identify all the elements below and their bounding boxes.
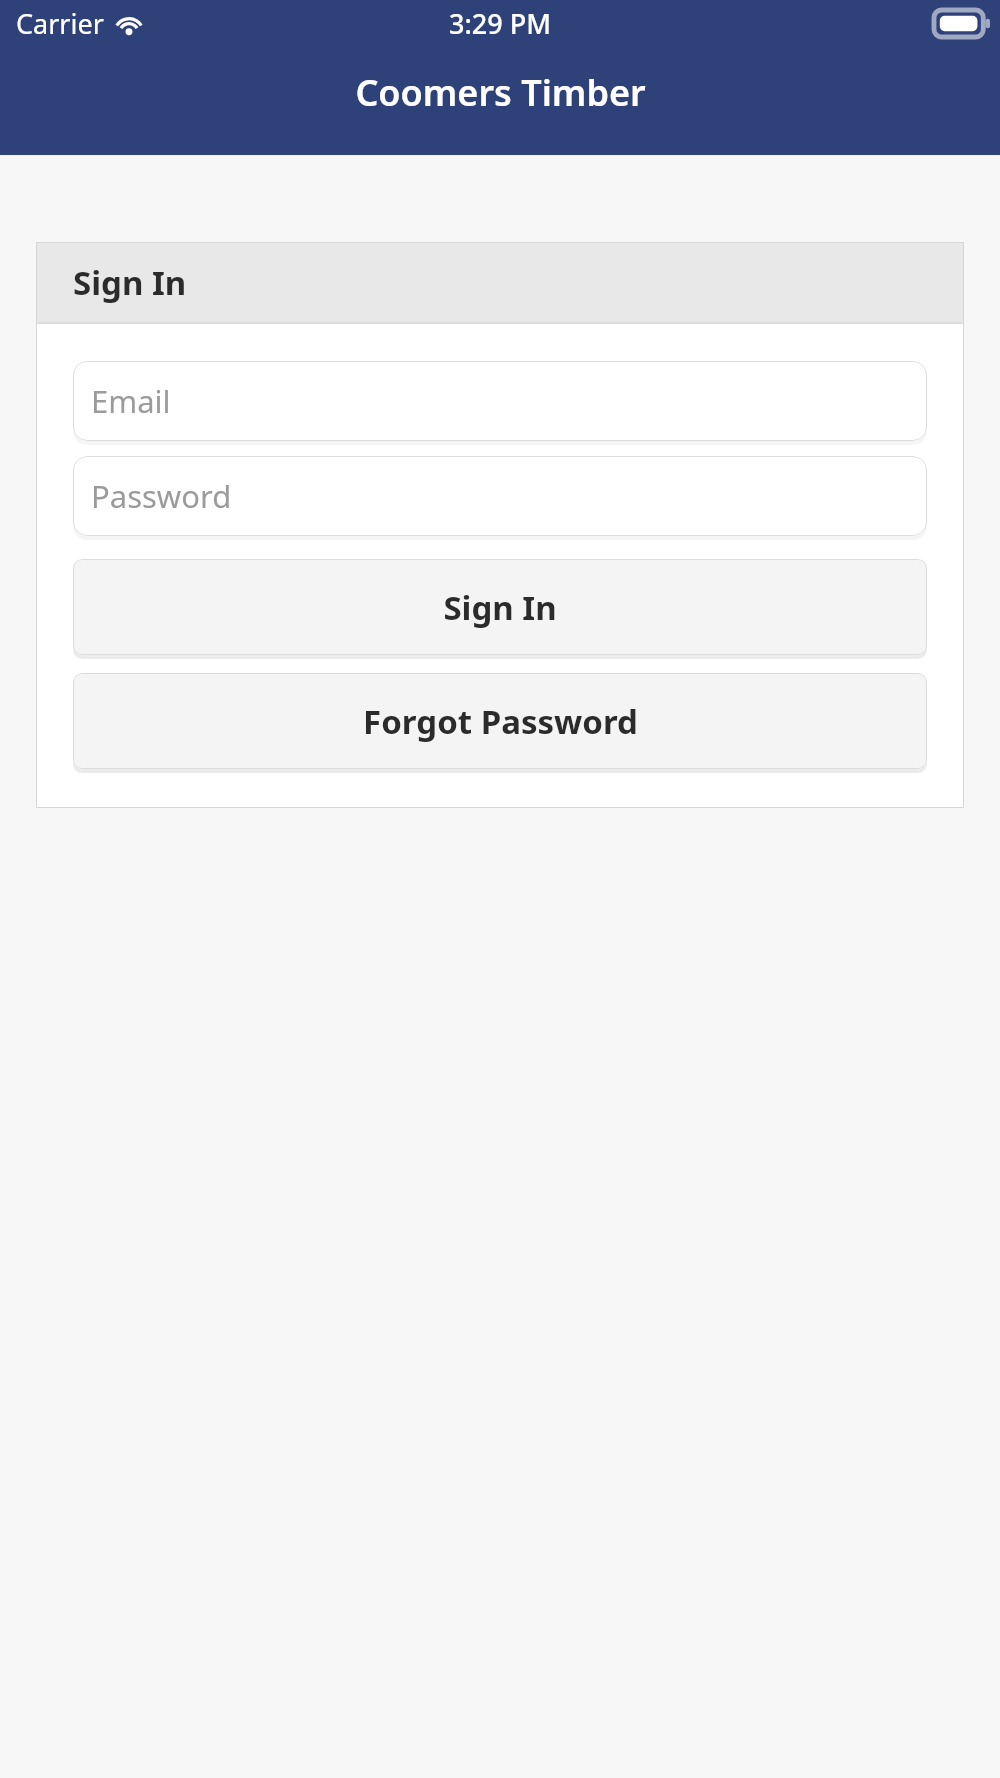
button[interactable]: Password [73, 456, 927, 538]
staticText: Carrier [16, 5, 104, 42]
button[interactable]: Forgot Password [73, 673, 927, 771]
other: Battery full [934, 10, 990, 37]
staticText: Forgot Password [363, 699, 638, 744]
button[interactable]: Email [73, 361, 927, 443]
other: Wi-Fi signal [114, 12, 144, 36]
staticText: Sign In [73, 260, 187, 305]
staticText: 3:29 PM [449, 5, 551, 42]
staticText: Sign In [443, 585, 557, 630]
staticText: Email [91, 380, 171, 422]
button[interactable]: Sign In [73, 559, 927, 657]
staticText: Password [91, 475, 232, 517]
staticText: Coomers Timber [355, 68, 646, 117]
